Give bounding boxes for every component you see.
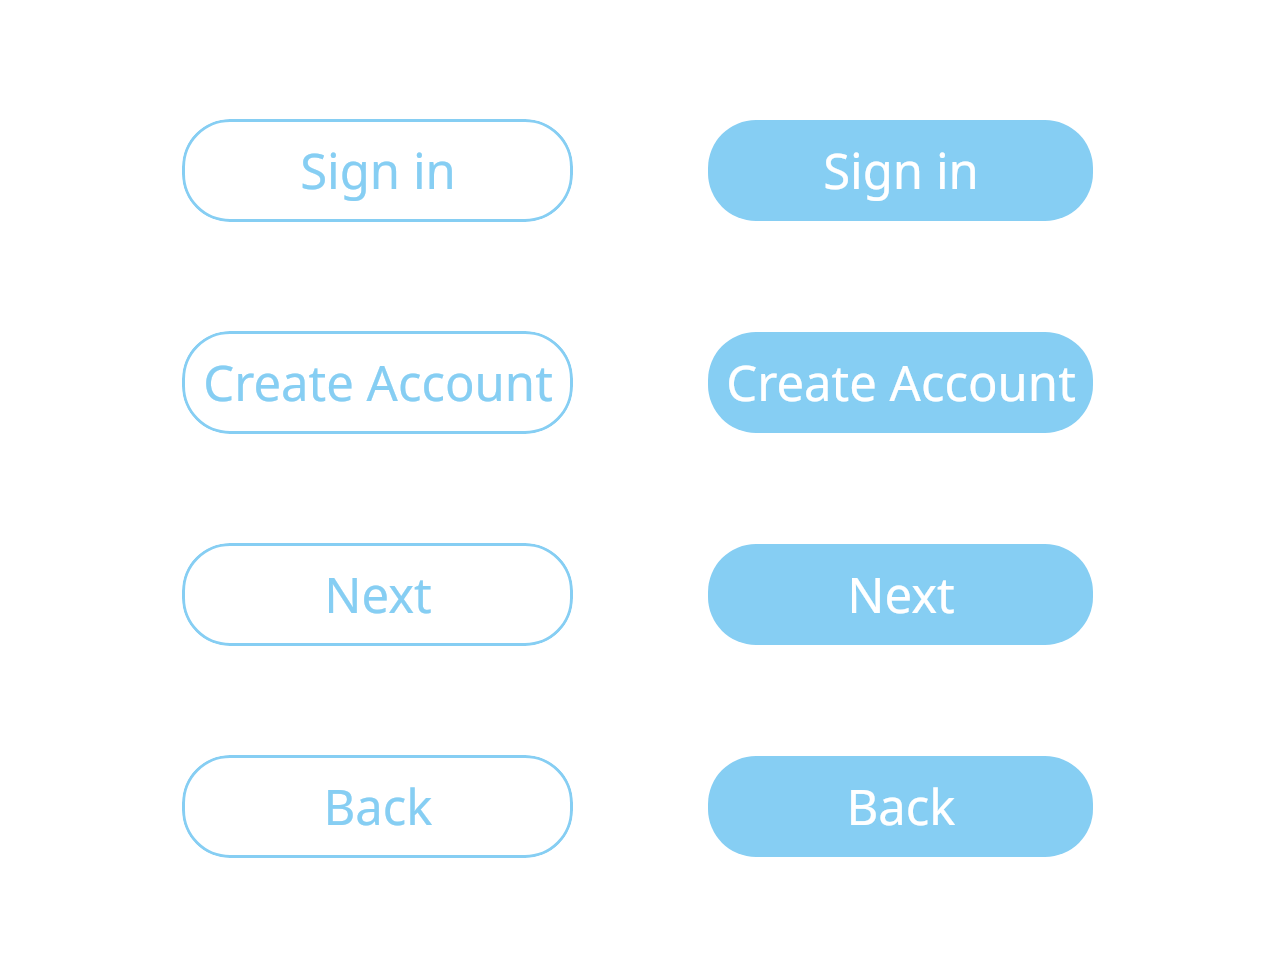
button[interactable]: Back bbox=[182, 755, 573, 858]
staticText: Sign in bbox=[823, 137, 979, 204]
staticText: Sign in bbox=[300, 137, 456, 204]
staticText: Back bbox=[846, 773, 956, 840]
button[interactable]: Create Account bbox=[182, 331, 573, 434]
staticText: Next bbox=[324, 561, 432, 628]
button[interactable]: Next bbox=[182, 543, 573, 646]
staticText: Next bbox=[847, 561, 955, 628]
button[interactable]: Create Account bbox=[708, 332, 1093, 433]
staticText: Create Account bbox=[726, 349, 1076, 416]
staticText: Create Account bbox=[203, 349, 553, 416]
staticText: Back bbox=[323, 773, 433, 840]
button[interactable]: Sign in bbox=[182, 119, 573, 222]
button[interactable]: Next bbox=[708, 544, 1093, 645]
button[interactable]: Sign in bbox=[708, 120, 1093, 221]
button[interactable]: Back bbox=[708, 756, 1093, 857]
